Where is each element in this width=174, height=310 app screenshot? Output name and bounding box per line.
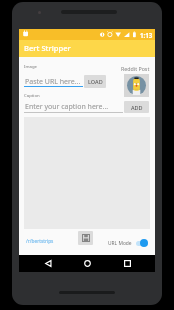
button[interactable]: /r/bertstrips [24, 235, 56, 248]
staticText: Reddit Post [121, 65, 150, 72]
staticText: ADD [131, 104, 143, 111]
button[interactable]: Save [78, 231, 93, 245]
staticText: Enter your caption here... [25, 102, 109, 112]
button[interactable]: Back [37, 255, 59, 272]
staticText: Image [24, 63, 37, 69]
button[interactable]: URL Mode toggle [135, 238, 148, 248]
staticText: URL Mode [108, 240, 132, 247]
button[interactable]: LOAD [84, 75, 106, 88]
staticText: Bert Stripper [24, 43, 71, 53]
button[interactable]: ADD [124, 101, 149, 113]
staticText: 1:13 [140, 31, 153, 39]
staticText: Caption [24, 92, 40, 98]
button[interactable]: Recents [116, 255, 138, 272]
button[interactable]: Home [76, 255, 98, 272]
staticText: /r/bertstrips [26, 238, 54, 245]
staticText: LOAD [88, 78, 103, 85]
button[interactable]: Reddit post image [124, 74, 149, 97]
staticText: Paste URL here... [25, 77, 81, 87]
